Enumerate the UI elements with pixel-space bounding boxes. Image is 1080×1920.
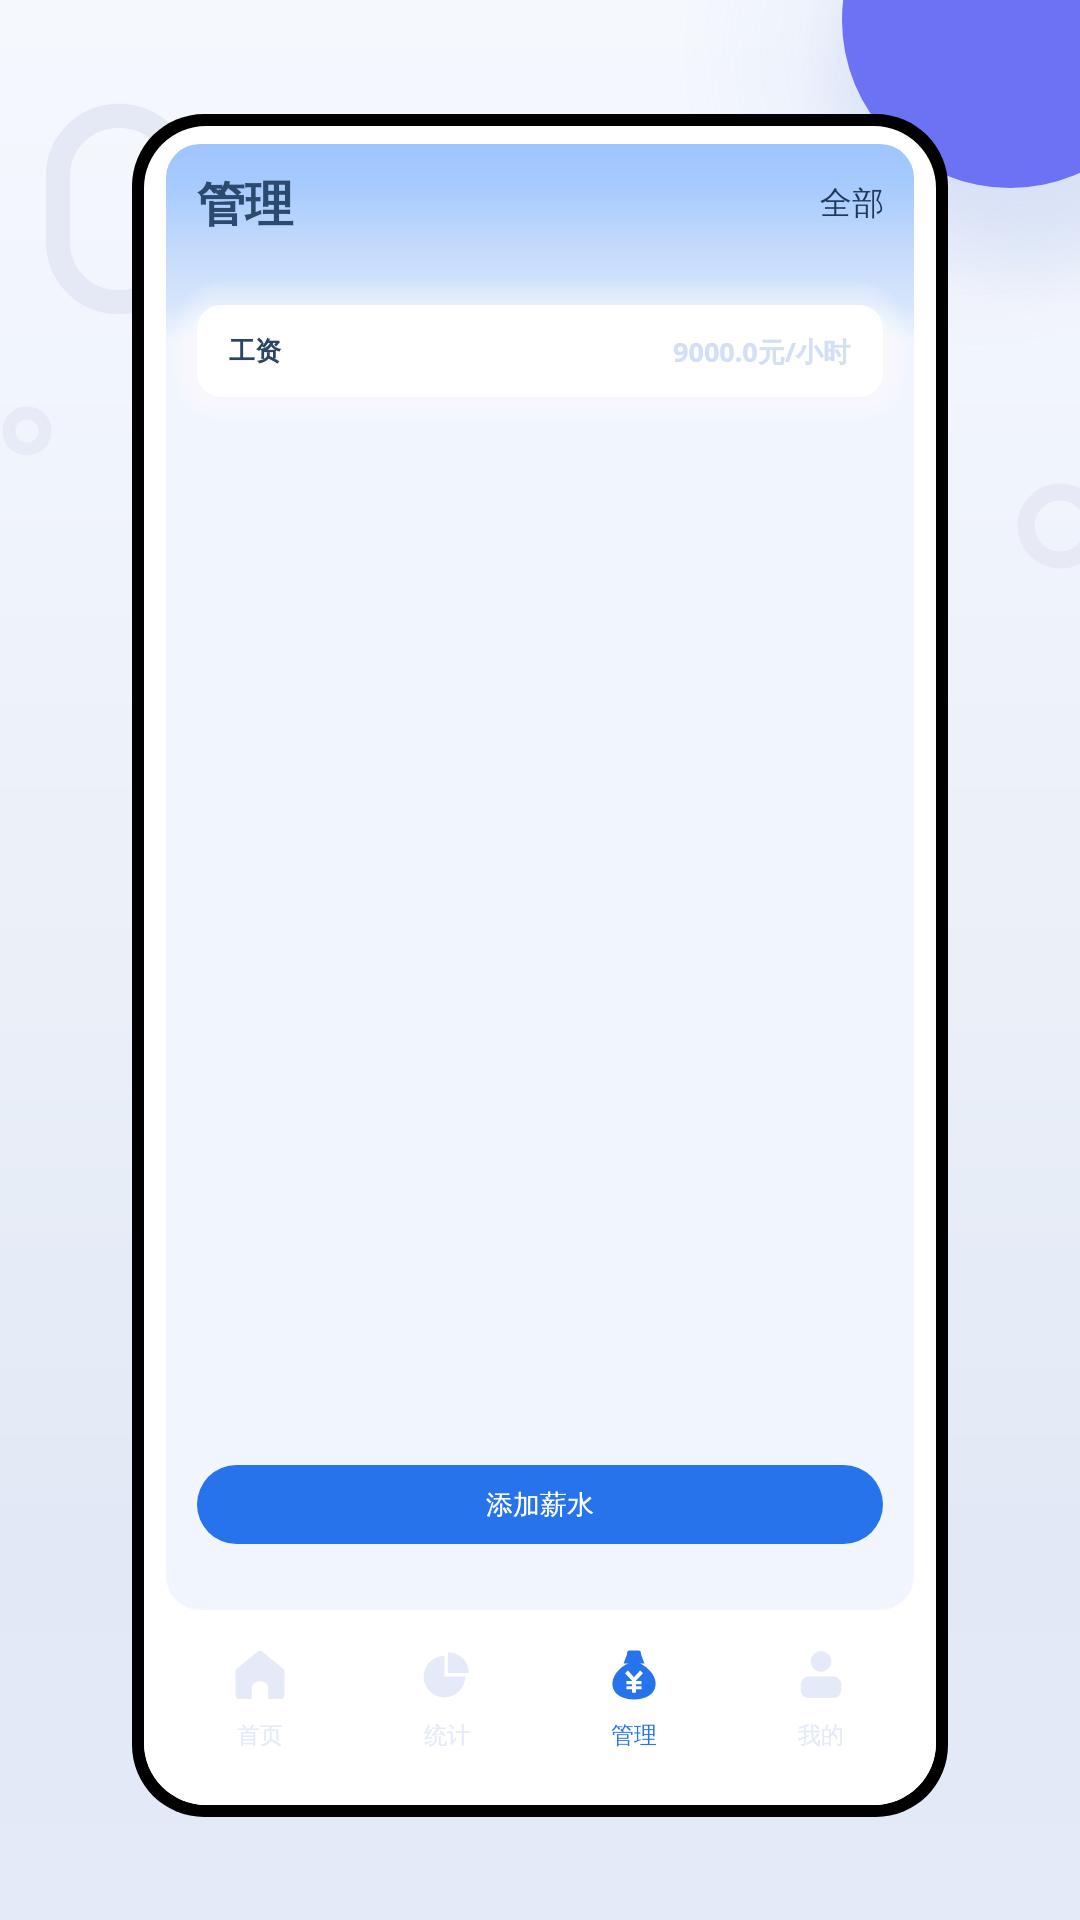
staticText: 我的: [798, 1721, 844, 1750]
staticText: 管理: [611, 1721, 657, 1750]
button[interactable]: 统计: [353, 1610, 540, 1805]
staticText: 添加薪水: [486, 1488, 594, 1522]
staticText: 首页: [237, 1721, 283, 1750]
staticText: 全部: [820, 183, 884, 223]
button[interactable]: 首页: [166, 1610, 353, 1805]
button[interactable]: 全部: [806, 169, 898, 237]
button[interactable]: 添加薪水: [197, 1465, 883, 1544]
button[interactable]: 工资: [197, 305, 883, 397]
staticText: 9000.0元/小时: [673, 333, 851, 370]
staticText: 统计: [424, 1721, 470, 1750]
staticText: 工资: [229, 335, 281, 368]
staticText: 管理: [197, 175, 293, 235]
button[interactable]: 管理: [540, 1610, 727, 1805]
button[interactable]: 我的: [727, 1610, 914, 1805]
